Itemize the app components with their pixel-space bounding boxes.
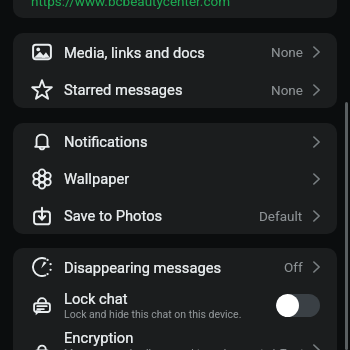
- staticText: Off: [284, 259, 303, 275]
- button[interactable]: Media, links and docs: [13, 33, 337, 71]
- staticText: Messages and calls are end-to-end encryp…: [64, 347, 313, 350]
- staticText: Encryption: [64, 329, 134, 346]
- button[interactable]: Notifications: [13, 123, 337, 160]
- staticText: Save to Photos: [64, 207, 163, 224]
- button[interactable]: Lock chat: [13, 286, 337, 324]
- button[interactable]: Disappearing messages: [13, 248, 337, 286]
- staticText: Media, links and docs: [64, 44, 205, 61]
- staticText: https://www.bcbeautycenter.com: [31, 0, 230, 9]
- staticText: Starred messages: [64, 81, 183, 98]
- staticText: Default: [259, 208, 303, 224]
- staticText: Wallpaper: [64, 170, 130, 187]
- button[interactable]: https://www.bcbeautycenter.com: [13, 0, 337, 18]
- staticText: Lock and hide this chat on this device.: [64, 308, 242, 320]
- staticText: Disappearing messages: [64, 259, 222, 276]
- staticText: None: [271, 44, 303, 60]
- button[interactable]: Wallpaper: [13, 160, 337, 197]
- staticText: Notifications: [64, 133, 148, 150]
- button[interactable]: Starred messages: [13, 71, 337, 108]
- staticText: None: [271, 82, 303, 98]
- button[interactable]: Save to Photos: [13, 197, 337, 234]
- button[interactable]: Encryption: [13, 324, 337, 350]
- staticText: Lock chat: [64, 290, 128, 307]
- button[interactable]: Lock chat toggle: [276, 294, 320, 317]
